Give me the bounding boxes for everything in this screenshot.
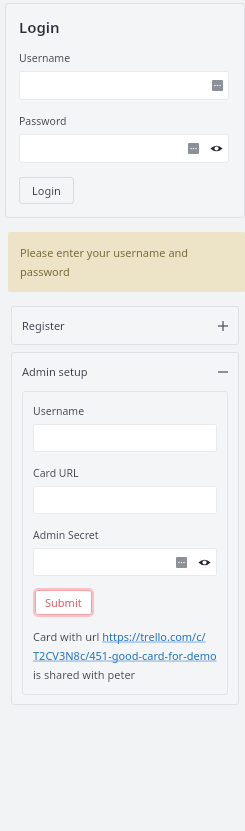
button[interactable]: Show password — [210, 142, 223, 155]
staticText: Admin Secret — [33, 528, 99, 542]
button[interactable]: Register — [11, 306, 239, 345]
button[interactable] — [33, 486, 217, 514]
staticText: Username — [19, 51, 71, 65]
staticText: Register — [22, 318, 65, 333]
staticText: Admin setup — [22, 364, 88, 379]
button[interactable]: Show password — [19, 134, 229, 163]
staticText: Please enter your username and password — [20, 245, 233, 279]
button[interactable]: Show secret — [33, 548, 217, 576]
staticText: Password — [19, 114, 67, 128]
staticText: Login — [19, 17, 60, 37]
button[interactable]: Submit — [35, 590, 92, 615]
button[interactable]: Show secret — [198, 556, 211, 569]
staticText: Card URL — [33, 466, 79, 480]
staticText: Login — [32, 183, 61, 198]
staticText: Submit — [45, 595, 82, 610]
button[interactable] — [33, 424, 217, 452]
button[interactable]: Login — [19, 177, 74, 204]
staticText: Card with url https://trello.com/c/T2CV3… — [33, 629, 217, 682]
button[interactable]: Admin setup — [11, 352, 239, 391]
staticText: Username — [33, 404, 85, 418]
button[interactable] — [19, 71, 229, 100]
